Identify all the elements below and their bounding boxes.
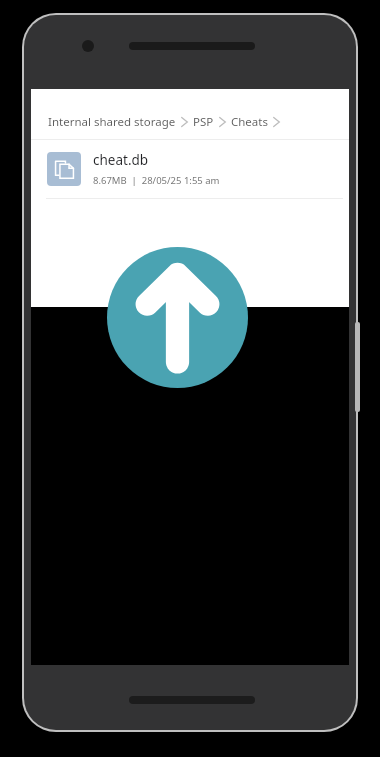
staticText: Internal shared storage <box>48 114 176 130</box>
button[interactable]: Upload <box>107 247 248 388</box>
staticText: PSP <box>193 114 214 130</box>
button[interactable]: cheat.db <box>31 140 349 198</box>
staticText: Cheats <box>231 114 268 130</box>
staticText: 8.67MB | 28/05/25 1:55 am <box>93 174 220 187</box>
staticText: cheat.db <box>93 151 149 169</box>
button[interactable]: Internal shared storage <box>31 105 349 139</box>
